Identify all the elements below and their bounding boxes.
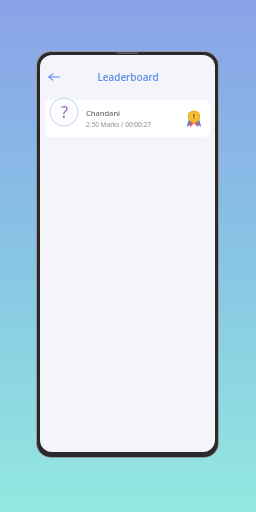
button[interactable]: Chandani xyxy=(45,100,210,137)
staticText: Leaderboard xyxy=(97,70,159,84)
staticText: 2.50 Marks / 00:00:27 xyxy=(86,120,151,129)
staticText: ? xyxy=(61,101,68,123)
button[interactable]: Back xyxy=(44,67,64,87)
button[interactable]: First place medal xyxy=(185,110,203,128)
button[interactable]: Profile avatar xyxy=(49,97,79,127)
staticText: Chandani xyxy=(86,108,121,118)
